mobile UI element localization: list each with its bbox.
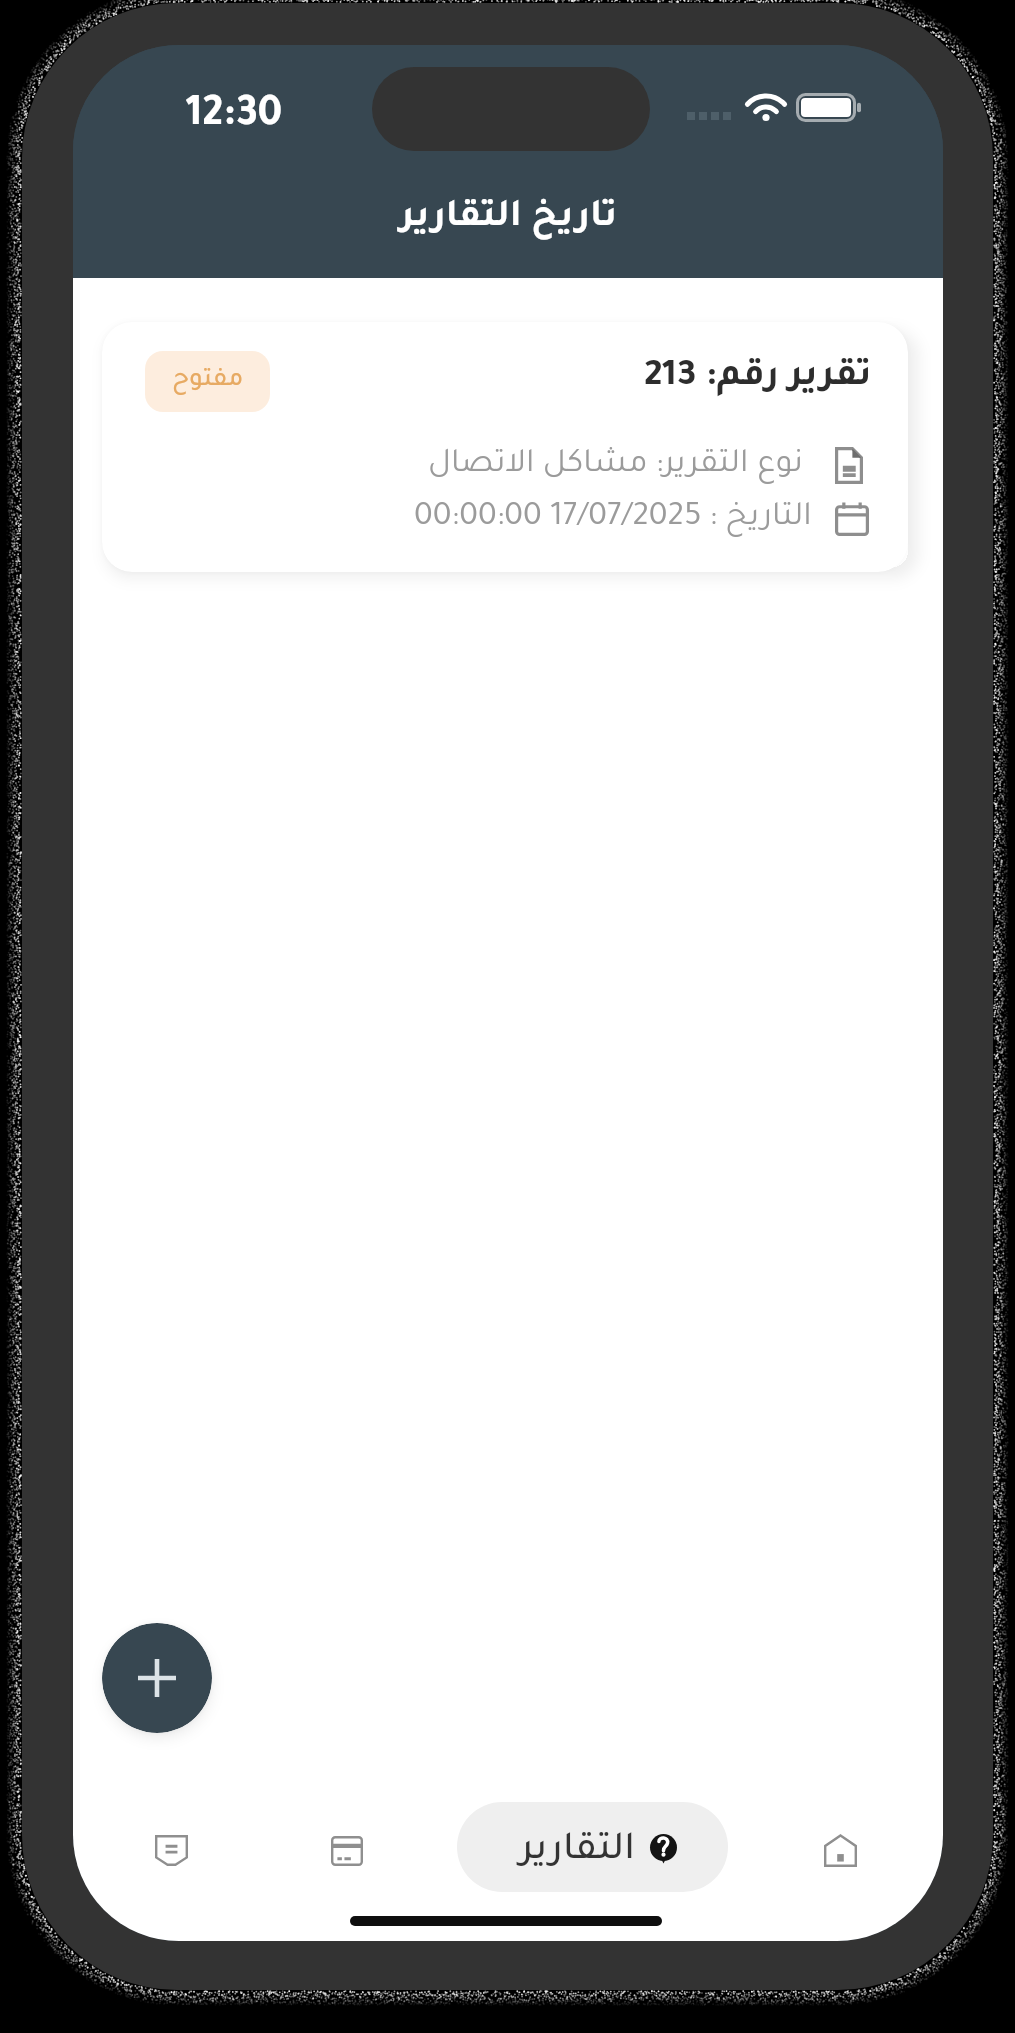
button[interactable]: تقرير رقم: 213 <box>102 322 908 572</box>
button[interactable]: Add report <box>102 1623 212 1733</box>
staticText: نوع التقرير: مشاكل الاتصال <box>428 449 804 483</box>
button[interactable]: Home <box>784 1794 896 1906</box>
staticText: التاريخ : 17/07/2025 00:00:00 <box>414 502 812 536</box>
staticText: تقرير رقم: 213 <box>644 359 872 398</box>
staticText: تاريخ التقارير <box>400 200 617 239</box>
staticText: 12:30 <box>186 96 283 140</box>
button[interactable]: Cards <box>291 1795 403 1907</box>
button[interactable]: التقارير <box>457 1802 728 1892</box>
staticText: التقارير <box>520 1832 635 1872</box>
button[interactable]: Warranties <box>115 1795 227 1907</box>
staticText: مفتوح <box>172 368 244 395</box>
